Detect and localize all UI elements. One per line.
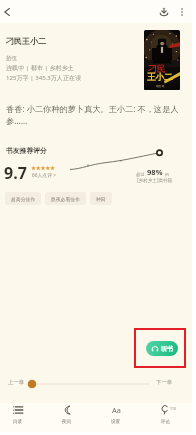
button[interactable]: Book cover (144, 30, 180, 90)
button[interactable]: Download (153, 1, 174, 22)
staticText: 种田 (96, 196, 106, 202)
button[interactable]: 种田 (90, 192, 112, 205)
staticText: 香香: 小二你种的萝卜真大。王小二: 不，这是人参…… (6, 103, 183, 126)
staticText: Aa (112, 405, 121, 415)
staticText: 超过 (136, 172, 145, 177)
staticText: 拾伍 (6, 55, 18, 62)
staticText: 设置 (111, 419, 121, 425)
staticText: 王小二 (147, 72, 173, 83)
staticText: 评论 (161, 419, 171, 425)
button[interactable]: 熬夜必看佳作 (45, 192, 86, 205)
staticText: 110 (170, 406, 176, 411)
staticText: 超高分佳作 (11, 196, 35, 202)
button[interactable]: Aa (91, 403, 140, 425)
button[interactable]: 夜间 (42, 403, 91, 425)
button[interactable]: More options (171, 1, 192, 22)
button[interactable]: 110 (141, 403, 190, 425)
staticText: 熬夜必看佳作 (51, 196, 80, 202)
staticText: 125万字 | 345.3万人正在读 (6, 73, 82, 81)
staticText: 拾伍 著 (156, 84, 165, 88)
button[interactable]: 下一章 (156, 379, 173, 386)
staticText: 刁民 (148, 64, 165, 75)
button[interactable]: 目录 (0, 403, 42, 425)
button[interactable]: 超高分佳作 (5, 192, 41, 205)
button[interactable]: 66人点评 > (32, 172, 56, 179)
staticText: 9.7 (4, 162, 27, 184)
staticText: 刁民王小二 (6, 36, 46, 46)
staticText: 连载中 | 都市 | 乡村乡土 (6, 63, 74, 71)
staticText: 书友推荐评分 (6, 146, 47, 155)
staticText: 夜间 (62, 419, 72, 425)
button[interactable]: Back (0, 1, 17, 22)
staticText: 目录 (13, 419, 23, 425)
button[interactable]: 听书 (146, 341, 178, 356)
staticText: 听书 (161, 345, 173, 353)
staticText: 的 (165, 172, 170, 177)
staticText: 98% (147, 167, 163, 177)
staticText: [乡村乡土]类书籍 (137, 177, 173, 183)
button[interactable]: 上一章 (8, 379, 25, 386)
